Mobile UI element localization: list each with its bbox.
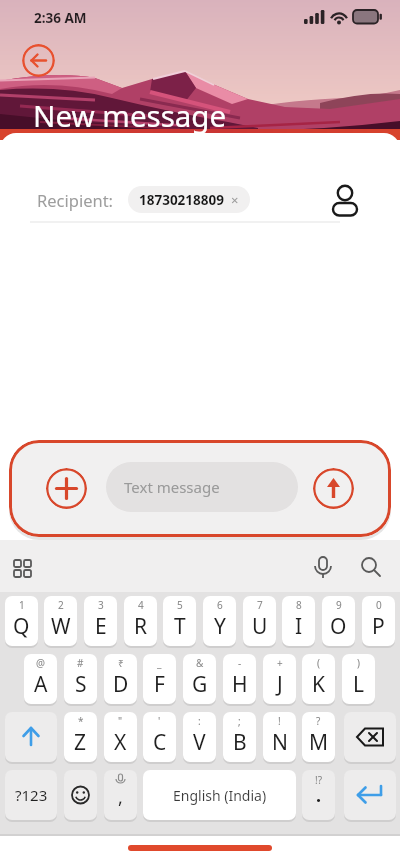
staticText: P: [372, 612, 385, 641]
button[interactable]: _: [143, 654, 176, 704]
button[interactable]: !: [263, 712, 296, 762]
staticText: _: [157, 656, 162, 670]
button[interactable]: [330, 182, 360, 218]
staticText: F: [154, 670, 165, 699]
staticText: J: [277, 670, 283, 699]
button[interactable]: 0: [362, 596, 395, 646]
staticText: D: [113, 670, 129, 699]
staticText: English (India): [173, 786, 267, 805]
staticText: *: [78, 714, 84, 728]
button[interactable]: ₹: [104, 654, 137, 704]
button[interactable]: *: [64, 712, 97, 762]
staticText: :: [198, 714, 201, 728]
staticText: 7: [257, 598, 263, 612]
button[interactable]: Text message: [106, 462, 298, 512]
staticText: E: [95, 612, 107, 641]
staticText: ,: [118, 785, 123, 810]
button[interactable]: English (India): [143, 770, 296, 820]
staticText: V: [193, 728, 206, 757]
staticText: .: [316, 783, 322, 808]
staticText: Recipient:: [37, 189, 114, 211]
staticText: &: [196, 656, 204, 670]
staticText: Z: [74, 728, 87, 757]
staticText: +: [277, 656, 283, 670]
button[interactable]: ?: [302, 712, 335, 762]
button[interactable]: [357, 554, 385, 582]
button[interactable]: [344, 712, 396, 762]
button[interactable]: [64, 770, 97, 820]
staticText: X: [114, 728, 127, 757]
staticText: Q: [13, 612, 30, 641]
staticText: 1: [19, 598, 25, 612]
button[interactable]: 2: [44, 596, 77, 646]
staticText: L: [353, 670, 365, 699]
staticText: S: [75, 670, 87, 699]
button[interactable]: 9: [322, 596, 355, 646]
staticText: W: [51, 612, 71, 641]
staticText: @: [36, 656, 45, 670]
staticText: ): [357, 656, 360, 670]
staticText: -: [238, 656, 242, 670]
staticText: #: [77, 656, 84, 670]
staticText: A: [34, 670, 48, 699]
staticText: ×: [231, 191, 239, 209]
staticText: 9: [336, 598, 342, 612]
staticText: U: [252, 612, 268, 641]
staticText: 2: [58, 598, 64, 612]
button[interactable]: [10, 556, 38, 584]
button[interactable]: &: [183, 654, 216, 704]
staticText: ₹: [118, 656, 124, 670]
staticText: O: [330, 612, 347, 641]
staticText: ?123: [15, 785, 48, 805]
button[interactable]: [46, 468, 87, 509]
button[interactable]: [22, 44, 55, 77]
staticText: N: [272, 728, 288, 757]
staticText: (: [317, 656, 320, 670]
staticText: 6: [217, 598, 223, 612]
staticText: B: [233, 728, 247, 757]
staticText: !: [278, 714, 281, 728]
button[interactable]: 5: [163, 596, 196, 646]
staticText: !?: [315, 773, 323, 787]
button[interactable]: @: [24, 654, 57, 704]
staticText: ': [158, 714, 161, 728]
staticText: G: [192, 670, 208, 699]
button[interactable]: ): [342, 654, 375, 704]
button[interactable]: (: [302, 654, 335, 704]
staticText: T: [174, 612, 186, 641]
staticText: 3: [98, 598, 104, 612]
staticText: 5: [177, 598, 183, 612]
button[interactable]: !?: [302, 770, 335, 820]
staticText: ": [118, 714, 123, 728]
staticText: I: [295, 612, 303, 641]
button[interactable]: 1: [5, 596, 38, 646]
staticText: 0: [376, 598, 382, 612]
button[interactable]: 7: [243, 596, 276, 646]
staticText: Text message: [124, 477, 220, 497]
button[interactable]: [313, 468, 354, 509]
button[interactable]: 6: [203, 596, 236, 646]
button[interactable]: #: [64, 654, 97, 704]
staticText: New message: [33, 95, 227, 135]
button[interactable]: ?123: [5, 770, 57, 820]
button[interactable]: :: [183, 712, 216, 762]
button[interactable]: [309, 554, 337, 582]
button[interactable]: -: [223, 654, 256, 704]
staticText: 2:36 AM: [34, 9, 87, 27]
button[interactable]: 4: [124, 596, 157, 646]
button[interactable]: ;: [223, 712, 256, 762]
button[interactable]: 3: [84, 596, 117, 646]
staticText: R: [134, 612, 148, 641]
button[interactable]: ': [143, 712, 176, 762]
button[interactable]: [344, 770, 396, 820]
staticText: K: [312, 670, 325, 699]
staticText: ?: [316, 714, 321, 728]
button[interactable]: [5, 712, 57, 762]
button[interactable]: 8: [282, 596, 315, 646]
button[interactable]: ": [104, 712, 137, 762]
button[interactable]: ,: [104, 770, 137, 820]
button[interactable]: 18730218809: [128, 186, 250, 213]
staticText: Y: [214, 612, 226, 641]
staticText: H: [232, 670, 248, 699]
button[interactable]: +: [263, 654, 296, 704]
